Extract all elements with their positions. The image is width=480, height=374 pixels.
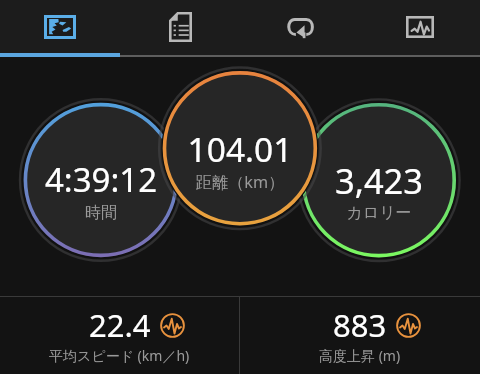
staticText: 平均スピード (km／h) — [49, 346, 190, 365]
staticText: 104.01 — [150, 126, 330, 172]
button[interactable]: Workout log — [120, 0, 240, 54]
staticText: 距離（km） — [150, 171, 330, 193]
staticText: カロリー — [289, 203, 469, 223]
button[interactable]: Routes — [240, 0, 360, 54]
staticText: 3,423 — [289, 157, 469, 204]
staticText: 883 — [333, 304, 387, 346]
button[interactable]: 22.4 — [0, 297, 239, 374]
button[interactable]: 883 — [240, 297, 480, 374]
staticText: 高度上昇 (m) — [319, 346, 401, 365]
button[interactable]: Map — [0, 0, 120, 54]
staticText: 22.4 — [89, 304, 151, 346]
staticText: 時間 — [11, 203, 191, 223]
staticText: 4:39:12 — [11, 157, 191, 202]
button[interactable]: Statistics — [360, 0, 480, 54]
